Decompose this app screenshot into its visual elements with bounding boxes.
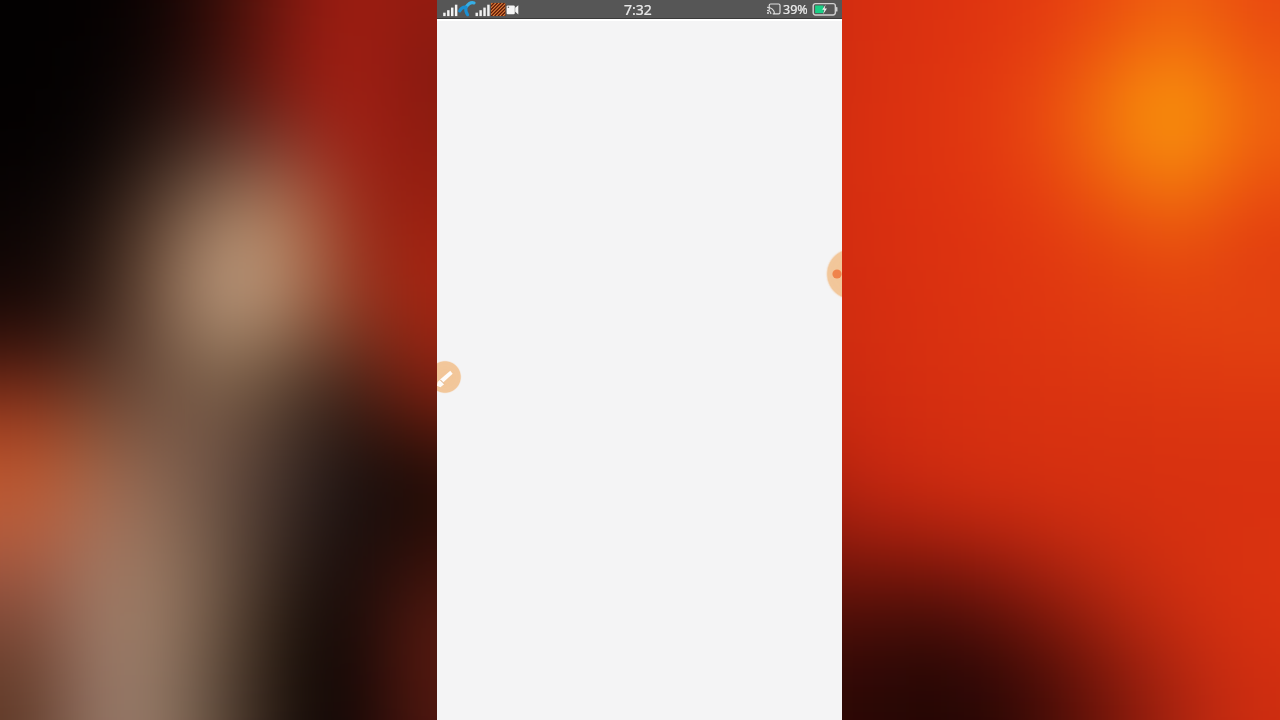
button[interactable]: Brush tool xyxy=(437,360,462,394)
button[interactable] xyxy=(437,21,842,720)
staticText: 39% xyxy=(783,1,808,18)
button[interactable]: Touch point xyxy=(825,247,842,301)
staticText: 7:32 xyxy=(624,0,652,18)
